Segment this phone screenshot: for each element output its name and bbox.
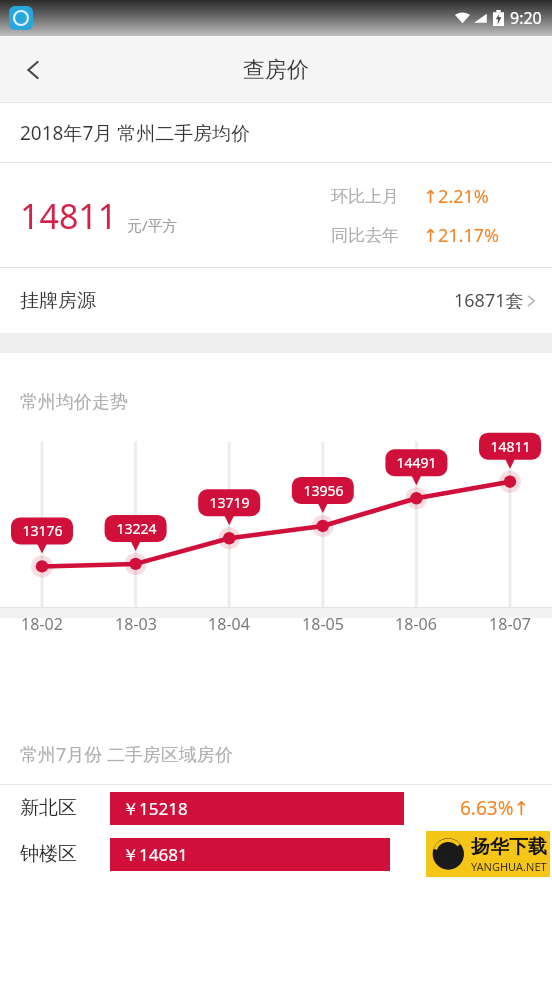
staticText: 13224 bbox=[116, 519, 157, 538]
staticText: 14491 bbox=[396, 453, 437, 472]
button[interactable]: Back bbox=[12, 48, 56, 92]
staticText: 18-05 bbox=[302, 613, 344, 635]
staticText: ↑21.17% bbox=[423, 223, 500, 248]
staticText: ￥14681 bbox=[122, 843, 188, 866]
staticText: 13956 bbox=[303, 481, 344, 500]
staticText: 14811 bbox=[490, 437, 531, 456]
staticText: 18-04 bbox=[208, 613, 250, 635]
staticText: 9:20 bbox=[510, 7, 542, 29]
staticText: 新北区 bbox=[20, 796, 77, 820]
button[interactable]: 钟楼区 bbox=[0, 831, 552, 877]
staticText: YANGHUA.NET bbox=[471, 859, 547, 874]
staticText: 18-06 bbox=[395, 613, 437, 635]
staticText: 常州均价走势 bbox=[20, 391, 128, 414]
staticText: 查房价 bbox=[243, 56, 309, 84]
staticText: 同比去年 bbox=[331, 225, 423, 246]
staticText: 元/平方 bbox=[127, 215, 178, 235]
staticText: 6.63%↑ bbox=[460, 795, 530, 821]
staticText: ↑2.21% bbox=[423, 184, 489, 209]
staticText: 钟楼区 bbox=[20, 842, 77, 866]
staticText: 18-02 bbox=[21, 613, 63, 635]
button[interactable]: 挂牌房源 bbox=[0, 268, 552, 333]
staticText: 常州7月份 二手房区域房价 bbox=[20, 742, 233, 767]
staticText: 14811 bbox=[20, 193, 118, 239]
staticText: ￥15218 bbox=[122, 797, 188, 820]
staticText: 扬华下载 bbox=[471, 835, 547, 859]
button[interactable]: Back bbox=[0, 36, 552, 103]
staticText: 13719 bbox=[209, 493, 250, 512]
button[interactable]: 新北区 bbox=[0, 785, 552, 831]
staticText: 2018年7月 常州二手房均价 bbox=[20, 120, 251, 146]
staticText: 18-07 bbox=[489, 613, 531, 635]
staticText: 环比上月 bbox=[331, 186, 423, 207]
staticText: 18-03 bbox=[115, 613, 157, 635]
staticText: 16871套 bbox=[454, 288, 524, 313]
staticText: 挂牌房源 bbox=[20, 289, 96, 313]
staticText: 13176 bbox=[22, 521, 63, 540]
